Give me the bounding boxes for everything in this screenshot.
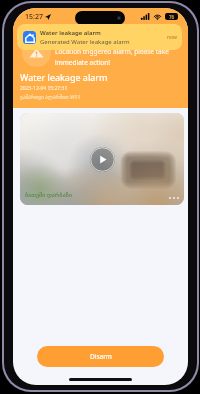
staticText: ბათუმი დარბაზი (25, 191, 72, 199)
staticText: Generated Water leakage alarm (40, 38, 130, 46)
button[interactable]: Disarm (37, 346, 164, 367)
staticText: 15:27 (25, 12, 43, 22)
staticText: immediate action! (55, 58, 111, 67)
staticText: Water leakage alarm (40, 29, 101, 37)
staticText: Disarm (90, 352, 112, 361)
staticText: now (167, 34, 177, 41)
staticText: 2023-12-04 15:27:31 (20, 85, 68, 92)
staticText: Water leakage alarm (20, 71, 108, 83)
staticText: 76 (169, 14, 175, 20)
staticText: Location triggered alarm, please take (55, 47, 169, 56)
button[interactable]: Play video (90, 147, 115, 172)
button[interactable]: Water leakage alarm (17, 24, 182, 50)
button[interactable]: Play video (20, 113, 184, 205)
staticText: გამართვი ალარმით W11 (20, 94, 81, 101)
